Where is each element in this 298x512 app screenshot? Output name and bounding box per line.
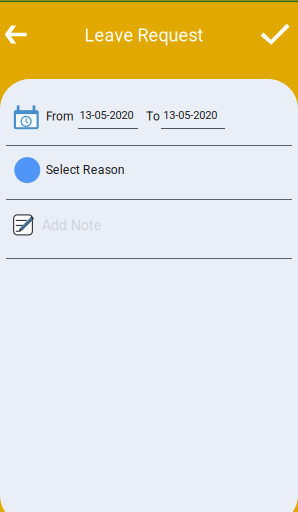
staticText: Leave Request <box>85 25 204 46</box>
button[interactable]: Back <box>0 12 40 56</box>
staticText: Add Note <box>42 217 102 234</box>
staticText: From <box>46 109 74 123</box>
staticText: Select Reason <box>46 163 125 177</box>
staticText: 13-05-2020 <box>163 109 217 122</box>
button[interactable]: Submit <box>253 14 297 58</box>
button[interactable]: From <box>0 79 298 145</box>
staticText: To <box>146 109 160 123</box>
button[interactable]: Select Reason <box>0 146 298 199</box>
button[interactable]: Add Note <box>0 200 298 258</box>
staticText: 13-05-2020 <box>79 109 133 122</box>
